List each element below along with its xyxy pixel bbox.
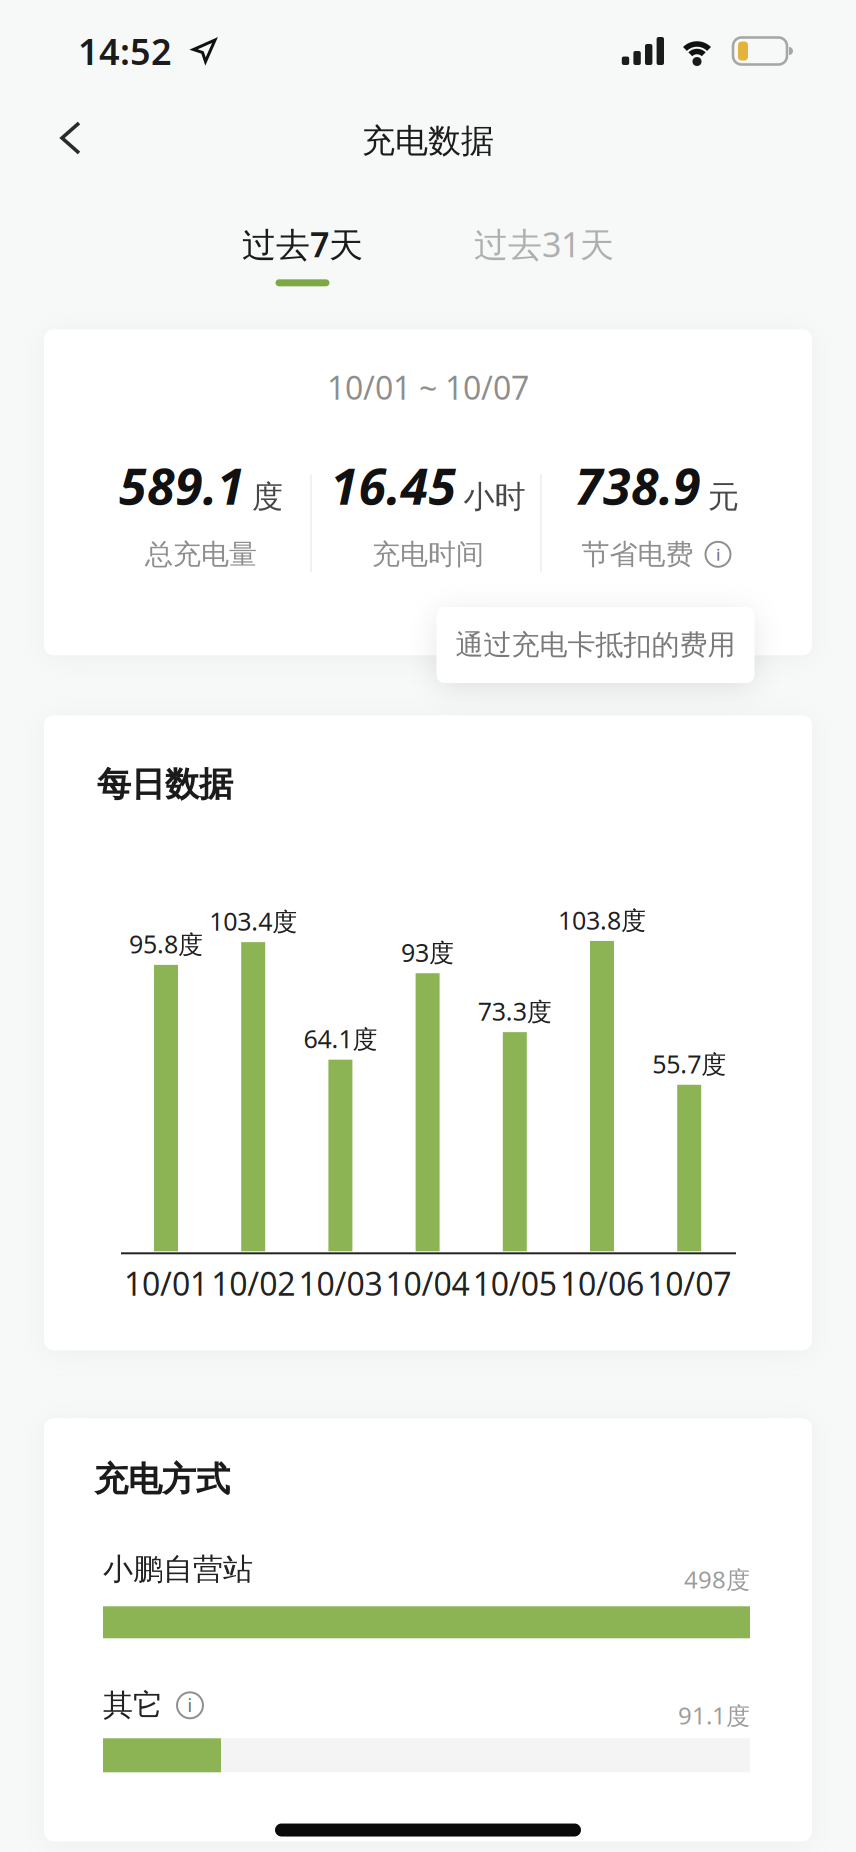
staticText: 过去7天 [242,221,363,267]
staticText: 10/02 [211,1261,295,1305]
staticText: 73.3度 [478,994,552,1028]
staticText: 充电方式 [94,1458,230,1501]
button[interactable]: 过去31天 [474,221,614,267]
button[interactable]: 其它说明 [163,1692,203,1718]
button[interactable]: 节省电费说明 [581,537,730,572]
staticText: 充电数据 [362,120,494,162]
staticText: i [716,543,720,566]
staticText: 10/07 [647,1261,731,1305]
staticText: i [187,1694,192,1717]
staticText: 498度 [684,1563,750,1596]
staticText: 10/01 [124,1261,208,1305]
staticText: 103.8度 [558,903,646,937]
staticText: 738.9 [575,451,701,519]
staticText: 10/01 ~ 10/07 [327,365,529,409]
staticText: 95.8度 [129,927,203,961]
staticText: 589.1 [119,451,245,519]
staticText: 10/03 [298,1261,382,1305]
button[interactable]: 过去7天 [242,221,363,286]
staticText: 10/06 [560,1261,644,1305]
staticText: 节省电费 [581,537,693,572]
staticText: 10/04 [386,1261,470,1305]
button[interactable]: 返回 [0,124,102,158]
staticText: 元 [708,477,739,516]
staticText: 充电时间 [372,537,484,572]
staticText: 93度 [401,935,454,969]
staticText: 小时 [463,477,525,516]
staticText: 103.4度 [209,904,297,938]
staticText: 总充电量 [145,537,257,572]
staticText: 通过充电卡抵扣的费用 [455,627,735,663]
staticText: 过去31天 [474,221,614,267]
staticText: 91.1度 [678,1699,750,1732]
staticText: 55.7度 [652,1047,726,1081]
staticText: 10/05 [473,1261,557,1305]
staticText: 64.1度 [303,1022,377,1056]
staticText: 每日数据 [97,763,233,806]
staticText: 16.45 [330,451,456,519]
staticText: 其它 [103,1686,163,1724]
staticText: 14:52 [78,26,172,75]
staticText: 小鹏自营站 [103,1550,253,1588]
staticText: 度 [252,477,283,516]
